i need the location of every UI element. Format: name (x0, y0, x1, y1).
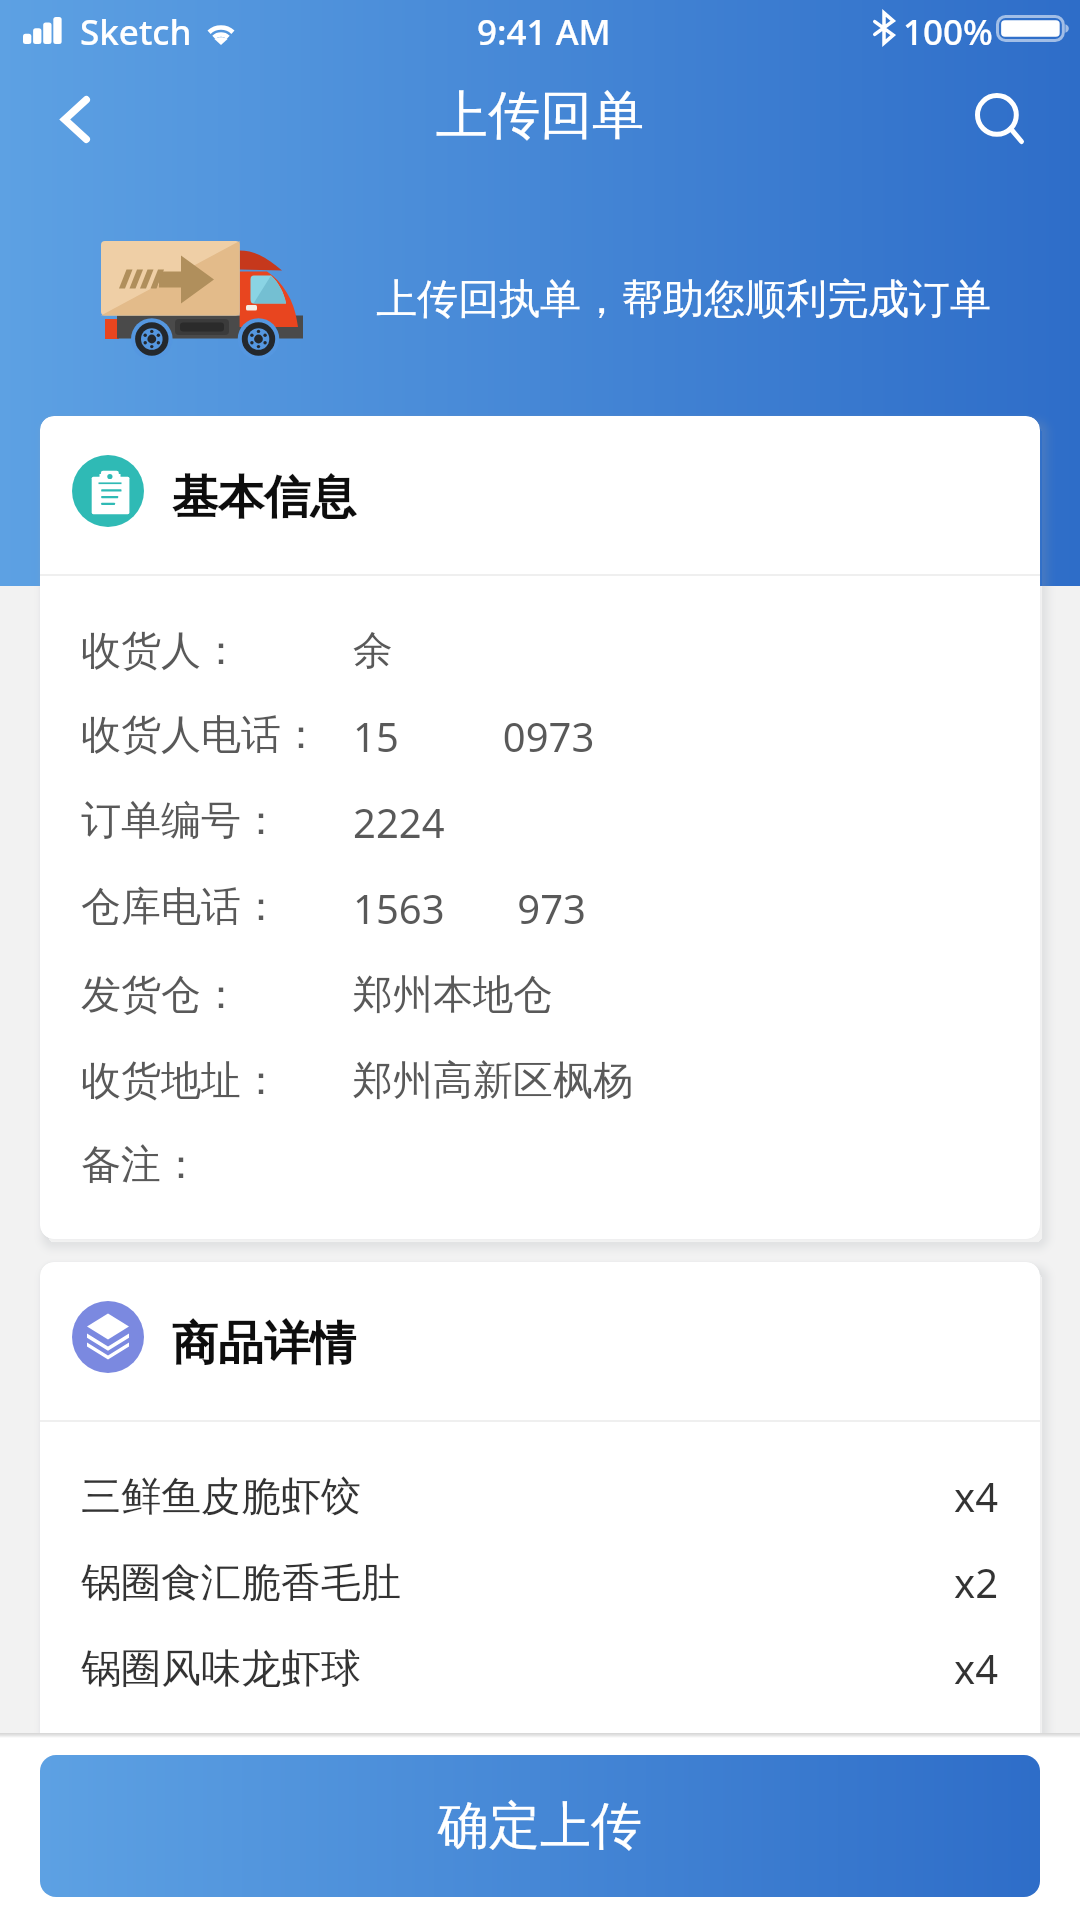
staticText: 上传回执单，帮助您顺利完成订单 (376, 274, 991, 326)
staticText: 郑州本地仓 (353, 969, 553, 1019)
staticText: x1 (954, 1727, 999, 1781)
staticText: x4 (954, 1641, 999, 1695)
staticText: 仓库电话： (81, 881, 281, 931)
staticText: 9:41 AM (477, 8, 611, 56)
staticText: 订单编号： (81, 795, 281, 845)
staticText: 锅圈食汇脆香毛肚 (81, 1557, 401, 1607)
button[interactable]: Search (951, 69, 1049, 167)
staticText: 备注： (81, 1139, 201, 1189)
staticText: 2224 (353, 795, 445, 849)
button[interactable]: 确定上传 (40, 1755, 1040, 1897)
staticText: 上传回单 (436, 83, 644, 149)
staticText: Sketch (80, 8, 192, 56)
staticText: 郑州高新区枫杨 (353, 1055, 633, 1105)
button[interactable]: Back (26, 70, 124, 168)
staticText: 确定上传 (438, 1794, 642, 1858)
staticText: 商品详情 (172, 1315, 356, 1373)
staticText: 锅圈风味龙虾球 (81, 1643, 361, 1693)
staticText: 100% (903, 8, 993, 56)
staticText: x4 (954, 1469, 999, 1523)
staticText: 余 (353, 625, 393, 675)
staticText: 收货人电话： (81, 709, 321, 759)
staticText: 发货仓： (81, 969, 241, 1019)
staticText: 1563 973 (353, 881, 586, 935)
staticText: 收货地址： (81, 1055, 281, 1105)
staticText: 三鲜鱼皮脆虾饺 (81, 1471, 361, 1521)
staticText: 收货人： (81, 625, 241, 675)
staticText: x2 (954, 1555, 999, 1609)
staticText: 15 0973 (353, 709, 595, 763)
staticText: 基本信息 (172, 469, 356, 527)
staticText: 锅圈虾滑 (81, 1729, 241, 1779)
